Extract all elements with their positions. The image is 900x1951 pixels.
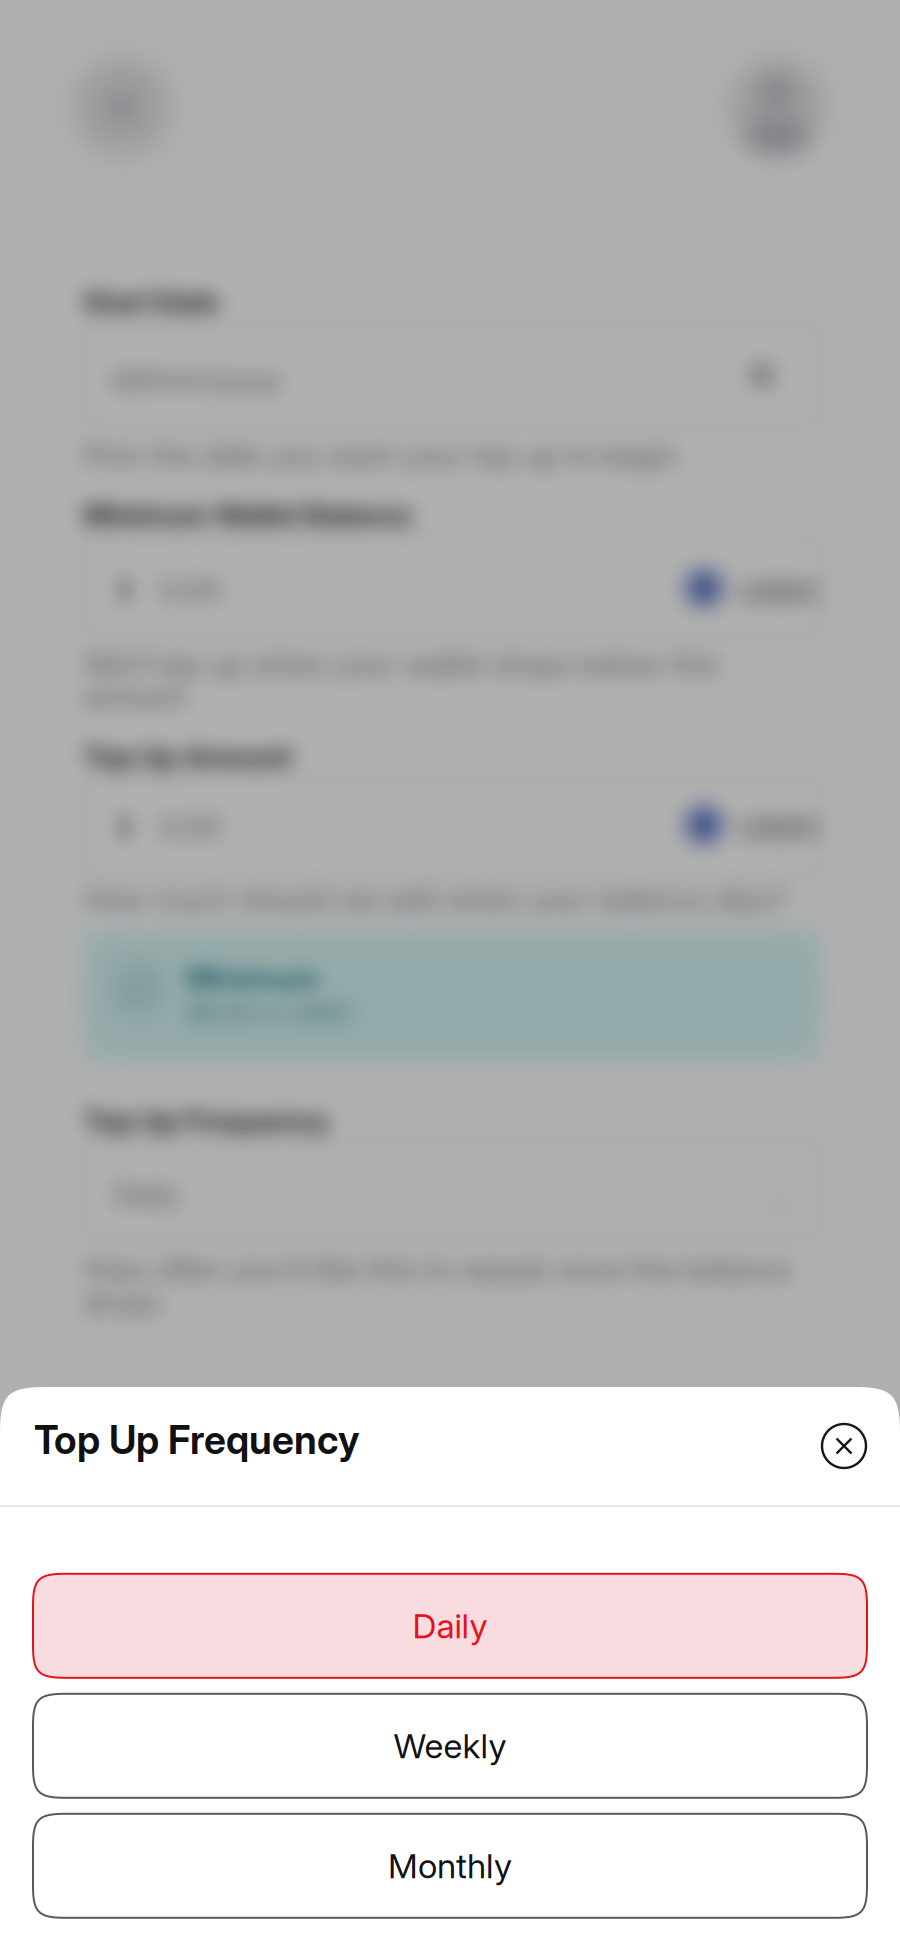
button[interactable]: Daily — [33, 1574, 867, 1678]
button[interactable]: Monthly — [33, 1814, 867, 1918]
staticText: Weekly — [393, 1725, 506, 1766]
button[interactable]: Close — [822, 1424, 866, 1468]
staticText: Top Up Frequency — [34, 1417, 360, 1463]
staticText: Daily — [412, 1605, 487, 1646]
staticText: Monthly — [388, 1845, 512, 1886]
button[interactable]: Weekly — [33, 1694, 867, 1798]
